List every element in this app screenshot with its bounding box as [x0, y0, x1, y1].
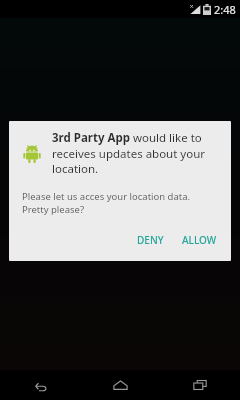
staticText: DENY: [137, 233, 164, 247]
button[interactable]: Recent apps: [160, 370, 240, 400]
staticText: ALLOW: [182, 233, 217, 247]
other: Android app icon: [22, 144, 42, 164]
button[interactable]: DENY: [131, 229, 170, 251]
staticText: Please let us acces your location data. …: [22, 190, 218, 216]
staticText: 2:48: [214, 2, 236, 17]
button[interactable]: Home: [80, 370, 160, 400]
staticText: 3rd Party App would like to receives upd…: [52, 130, 219, 176]
button[interactable]: ALLOW: [176, 229, 223, 251]
button[interactable]: Back: [0, 370, 80, 400]
